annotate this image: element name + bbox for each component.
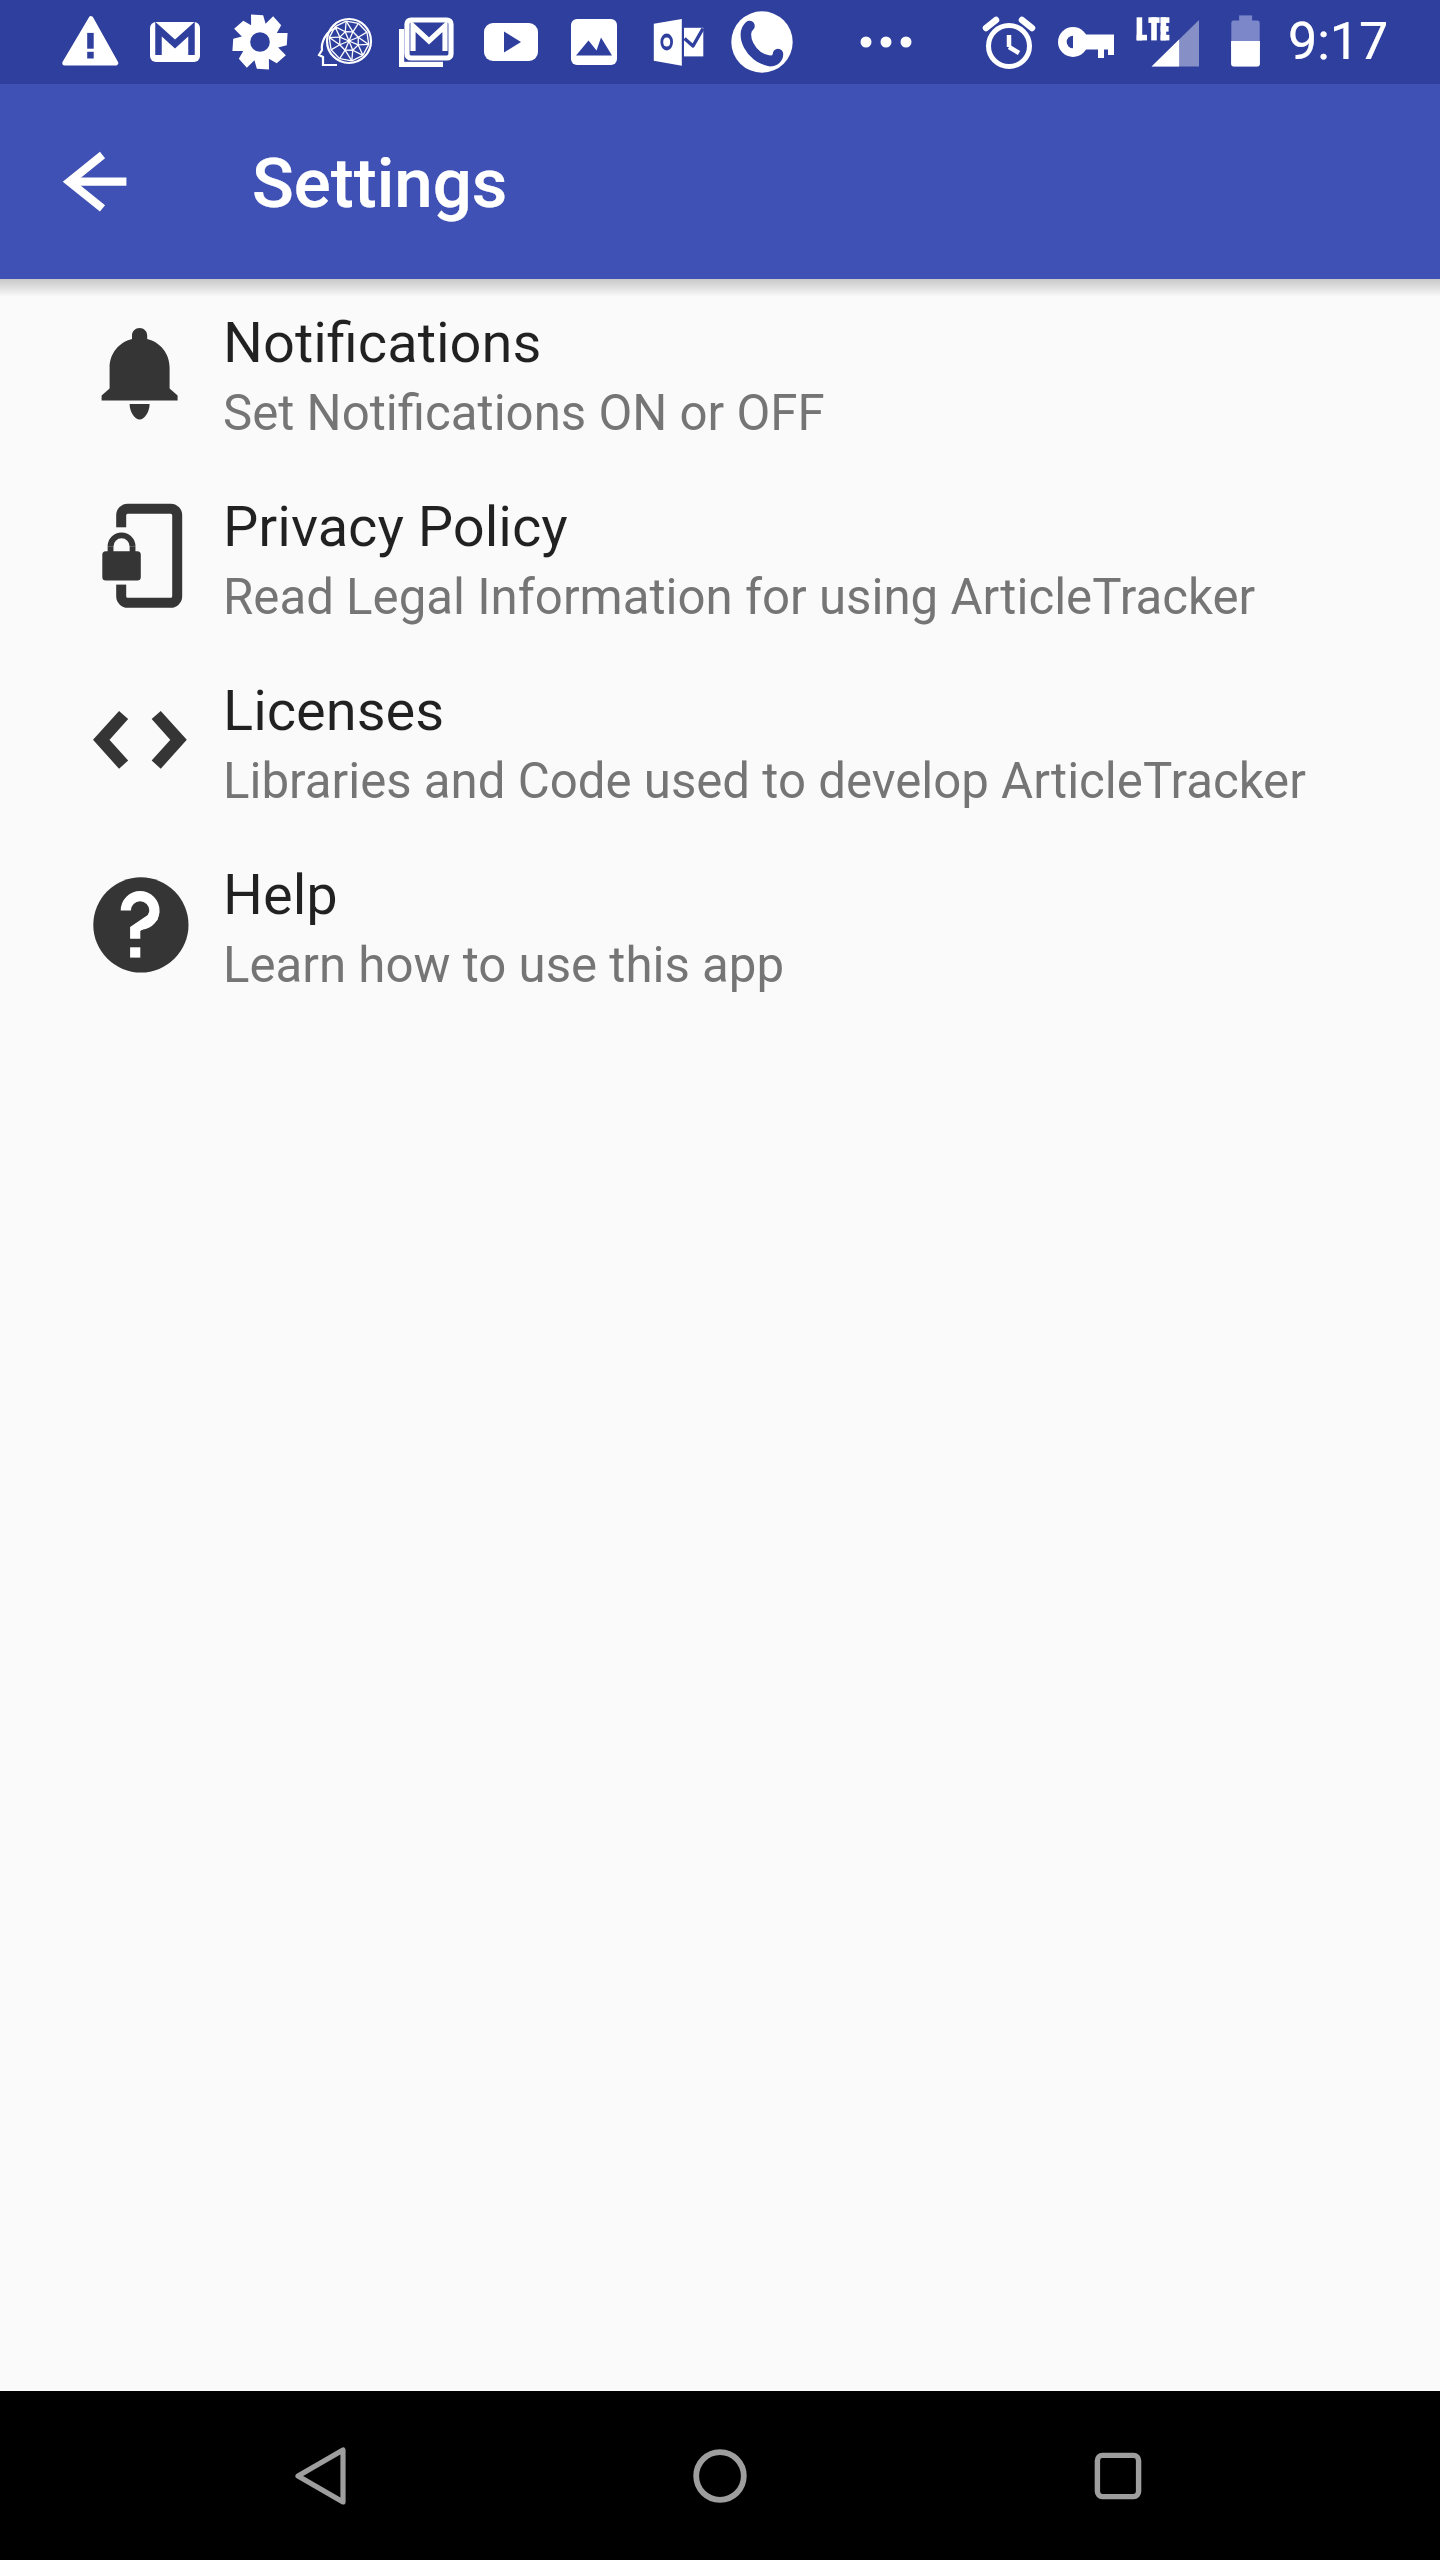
- staticText: Libraries and Code used to develop Artic…: [223, 752, 1306, 810]
- staticText: Licenses: [223, 678, 445, 744]
- staticText: Settings: [252, 143, 508, 224]
- staticText: 9:17: [1288, 11, 1389, 72]
- button[interactable]: Privacy Policy: [0, 463, 1440, 647]
- button[interactable]: Licenses: [0, 647, 1440, 831]
- button[interactable]: Back: [251, 2406, 391, 2546]
- button[interactable]: Back: [48, 134, 144, 230]
- button[interactable]: Notifications: [0, 279, 1440, 463]
- staticText: Set Notifications ON or OFF: [223, 384, 825, 442]
- button[interactable]: Home: [650, 2406, 790, 2546]
- button[interactable]: Help: [0, 831, 1440, 1015]
- staticText: Notifications: [223, 310, 542, 376]
- button[interactable]: Recent apps: [1048, 2406, 1188, 2546]
- staticText: Privacy Policy: [223, 494, 568, 560]
- staticText: Learn how to use this app: [223, 936, 785, 994]
- staticText: Help: [223, 862, 338, 928]
- staticText: Read Legal Information for using Article…: [223, 568, 1256, 626]
